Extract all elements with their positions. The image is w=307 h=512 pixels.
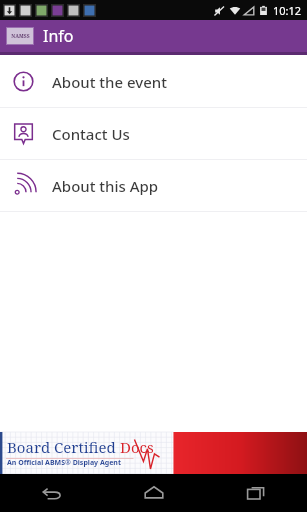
staticText: An Official ABMS® Display Agent — [7, 458, 121, 468]
staticText: Contact Us — [52, 124, 130, 144]
button[interactable]: About this App — [0, 160, 307, 211]
button[interactable]: About the event — [0, 56, 307, 107]
staticText: About the event — [52, 72, 167, 92]
staticText: Board Certified — [7, 437, 120, 457]
staticText: 10:12 — [273, 3, 302, 18]
button[interactable]: Contact Us — [0, 108, 307, 159]
button[interactable]: Home — [103, 474, 205, 512]
staticText: Docs — [120, 437, 154, 457]
button[interactable]: Advertisement: Board Certified Docs — [0, 432, 307, 474]
staticText: About this App — [52, 176, 159, 196]
staticText: NAMSS — [11, 33, 30, 40]
staticText: Info — [43, 25, 74, 47]
button[interactable]: Back — [0, 474, 103, 512]
button[interactable]: Recent apps — [205, 474, 307, 512]
